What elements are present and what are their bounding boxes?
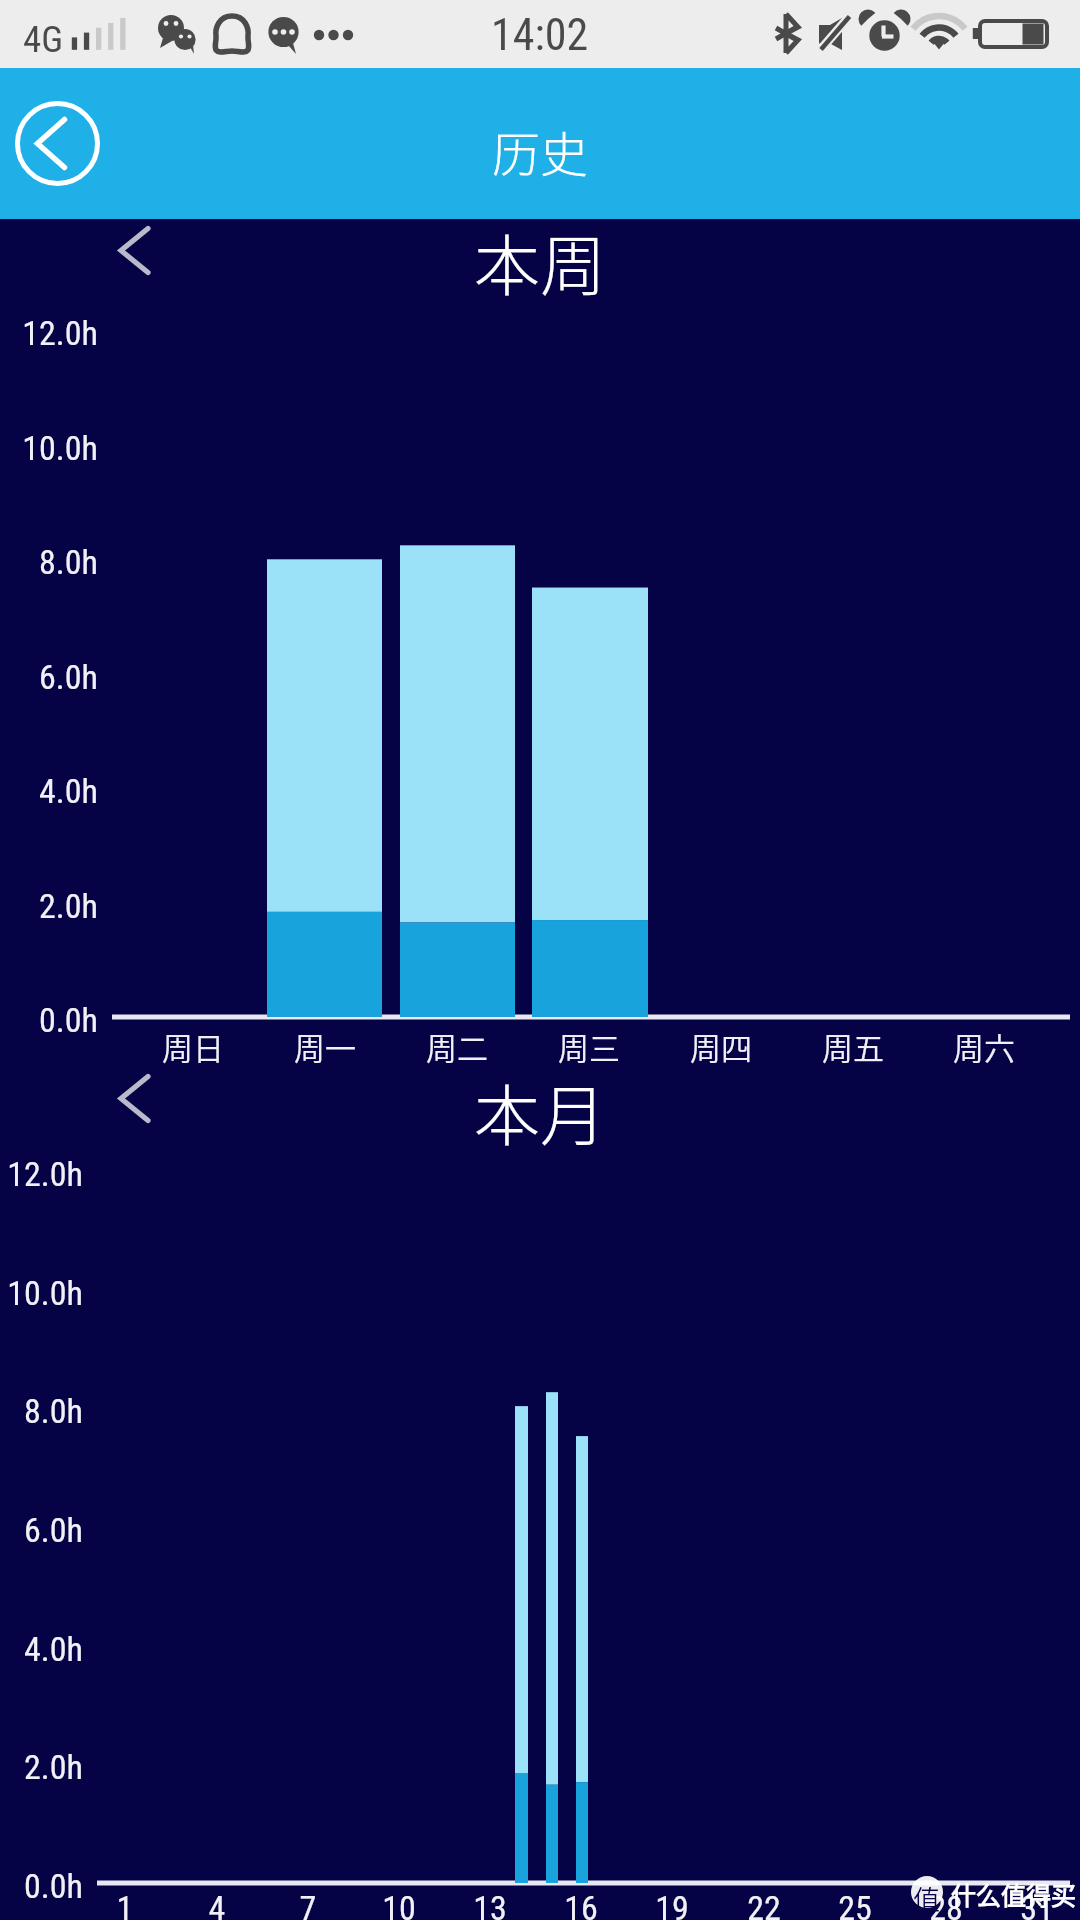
staticText: 31 (957, 1888, 1080, 1920)
staticText: 周三 (509, 1024, 669, 1069)
staticText: 10.0h (0, 1273, 83, 1313)
staticText: 周二 (377, 1024, 537, 1069)
staticText: 22 (684, 1888, 844, 1920)
staticText: 13 (410, 1888, 570, 1920)
staticText: 7 (228, 1888, 388, 1920)
staticText: 2.0h (0, 1747, 83, 1787)
staticText: 8.0h (0, 542, 98, 582)
staticText: 周日 (113, 1024, 273, 1069)
staticText: 4.0h (0, 771, 98, 811)
staticText: 16 (501, 1888, 661, 1920)
staticText: 什么值得买 (951, 1876, 1077, 1912)
staticText: 4 (137, 1888, 297, 1920)
staticText: 周一 (245, 1024, 405, 1069)
staticText: 6.0h (0, 1510, 83, 1550)
staticText: 12.0h (0, 313, 98, 353)
button[interactable]: Previous month (104, 1067, 166, 1129)
staticText: 周五 (773, 1024, 933, 1069)
staticText: 本周 (0, 213, 1080, 309)
staticText: 本月 (0, 1063, 1080, 1159)
staticText: 1 (45, 1888, 205, 1920)
staticText: 4.0h (0, 1629, 83, 1669)
staticText: 0.0h (0, 1866, 83, 1906)
staticText: 10.0h (0, 428, 98, 468)
staticText: 2.0h (0, 886, 98, 926)
staticText: 6.0h (0, 657, 98, 697)
staticText: 10 (319, 1888, 479, 1920)
staticText: 周四 (641, 1024, 801, 1069)
staticText: 14:02 (491, 9, 589, 61)
staticText: 0.0h (0, 1000, 98, 1040)
staticText: 19 (592, 1888, 752, 1920)
staticText: 12.0h (0, 1154, 83, 1194)
staticText: 25 (775, 1888, 935, 1920)
button[interactable]: Previous week (104, 219, 166, 281)
staticText: 值 (913, 1879, 940, 1918)
staticText: 8.0h (0, 1391, 83, 1431)
button[interactable]: Back (15, 101, 100, 186)
staticText: 周六 (904, 1024, 1064, 1069)
staticText: 4G (23, 18, 64, 61)
staticText: 历史 (492, 116, 589, 186)
staticText: 28 (866, 1888, 1026, 1920)
